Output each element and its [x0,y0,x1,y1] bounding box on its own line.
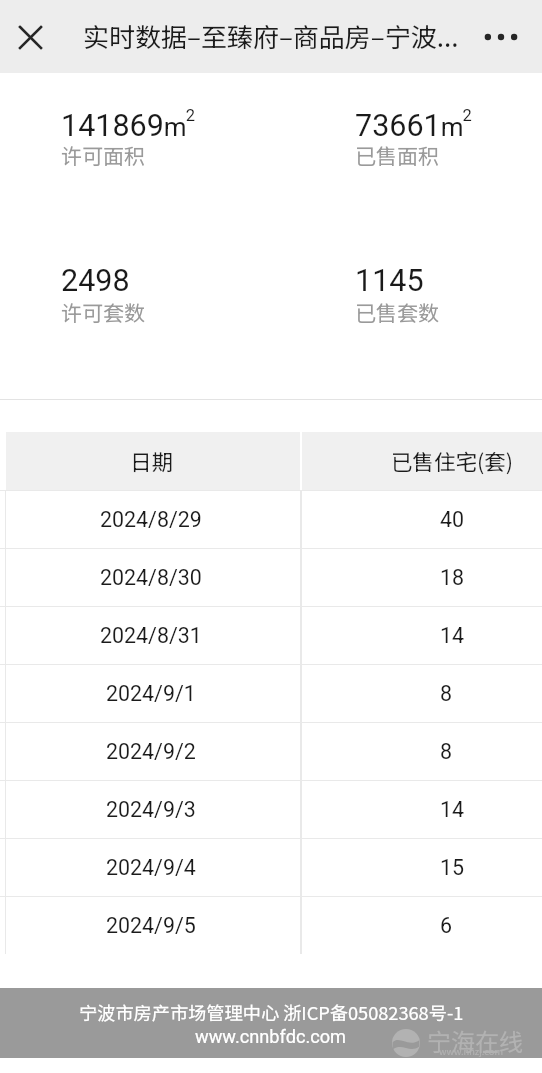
staticText: 18 [440,565,465,590]
staticText: 14 [440,623,465,648]
staticText: 实时数据–至臻府–商品房–宁波... [83,17,459,55]
staticText: 已售面积 [355,140,439,170]
staticText: 14 [440,797,465,822]
staticText: 141869m2 [61,106,195,143]
staticText: 许可面积 [61,140,145,170]
staticText: 2024/9/1 [106,681,196,706]
staticText: 已售套数 [355,297,439,327]
staticText: 73661m2 [355,106,472,143]
button[interactable]: More options [477,13,525,61]
staticText: 6 [440,913,453,938]
staticText: 8 [440,681,453,706]
staticText: 2024/8/29 [100,507,202,532]
staticText: 2024/8/31 [100,623,202,648]
staticText: 2024/9/4 [106,855,196,880]
staticText: 15 [440,855,465,880]
staticText: 日期 [130,445,174,476]
staticText: 1145 [355,263,424,299]
staticText: 2024/9/2 [106,739,196,764]
staticText: 2024/9/3 [106,797,196,822]
staticText: 宁波市房产市场管理中心 浙ICP备05082368号-1 [79,999,464,1025]
button[interactable]: Close [6,13,54,61]
staticText: 2498 [61,263,130,299]
staticText: 2024/9/5 [106,913,196,938]
staticText: 已售住宅(套) [391,445,514,476]
staticText: www.cnnbfdc.com [195,1026,347,1047]
staticText: www.nhzj.com [439,1044,503,1057]
staticText: 40 [440,507,465,532]
staticText: 8 [440,739,453,764]
staticText: 2024/8/30 [100,565,202,590]
staticText: 许可套数 [61,297,145,327]
staticText: 宁海在线 [427,1023,523,1058]
